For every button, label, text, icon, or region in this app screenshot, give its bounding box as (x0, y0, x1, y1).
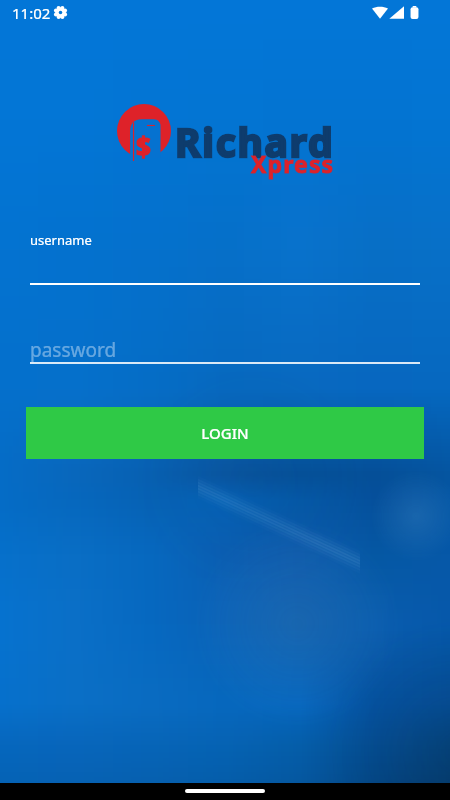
staticText: $ (136, 129, 151, 164)
staticText: Richard (175, 115, 335, 168)
staticText: Xpress (251, 148, 335, 179)
staticText: 11:02 (12, 3, 51, 23)
staticText: $ (136, 129, 151, 164)
staticText: Xpress (251, 148, 335, 179)
other: Settings (54, 6, 67, 19)
staticText: username (30, 231, 92, 249)
staticText: Richard (175, 115, 335, 168)
staticText: password (30, 337, 117, 363)
staticText: LOGIN (201, 423, 249, 443)
button[interactable]: LOGIN (26, 407, 424, 459)
